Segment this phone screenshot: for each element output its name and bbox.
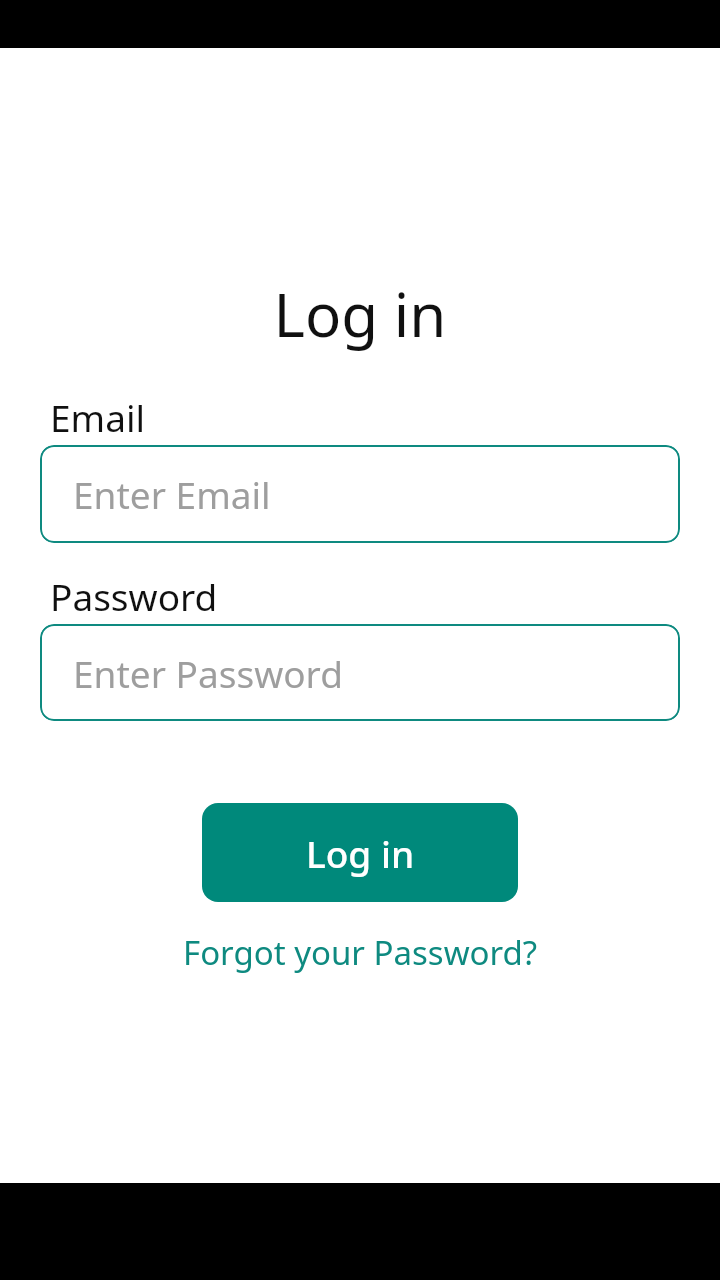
staticText: Enter Password	[73, 648, 343, 698]
staticText: Log in	[306, 828, 415, 878]
button[interactable]: Log in	[202, 803, 518, 902]
button[interactable]: Enter Email	[40, 445, 680, 543]
button[interactable]: Enter Password	[40, 624, 680, 721]
staticText: Password	[50, 571, 218, 621]
staticText: Forgot your Password?	[183, 930, 538, 975]
staticText: Email	[50, 392, 146, 442]
button[interactable]: Forgot your Password?	[0, 926, 720, 978]
staticText: Log in	[0, 273, 720, 355]
staticText: Enter Email	[73, 469, 271, 519]
